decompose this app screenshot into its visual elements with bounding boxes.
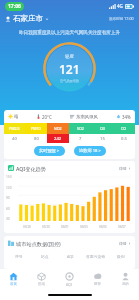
staticText: AQI: [67, 254, 74, 259]
button[interactable]: 首页: [0, 269, 27, 289]
staticText: SO2: [77, 126, 84, 131]
staticText: 242: [54, 136, 62, 142]
staticText: 120: [6, 186, 12, 190]
staticText: 0.5: [121, 136, 127, 142]
staticText: CO: [121, 126, 127, 131]
staticText: 30: [6, 217, 10, 221]
staticText: 我的: [122, 282, 129, 286]
other: Location: [5, 16, 11, 22]
staticText: 05/28: [23, 225, 31, 229]
staticText: 20°C: [42, 114, 52, 120]
staticText: AQI: [66, 282, 72, 287]
staticText: 7: [79, 136, 82, 142]
staticText: 晴: [14, 114, 19, 120]
staticText: 05/30: [42, 225, 50, 229]
staticText: 06/07: [118, 225, 126, 229]
button[interactable]: AQI: [55, 269, 83, 289]
button[interactable]: 区域: [27, 269, 55, 289]
staticText: 轻度: [65, 54, 74, 60]
staticText: 60: [6, 207, 10, 211]
staticText: O3: [100, 126, 105, 131]
staticText: 06/03: [80, 225, 88, 229]
staticText: NO2: [54, 126, 62, 131]
staticText: 06/05: [99, 225, 107, 229]
staticText: AQI变化趋势: [16, 165, 46, 172]
staticText: 4G: [117, 3, 123, 9]
staticText: 121: [59, 61, 80, 77]
staticText: 150: [6, 175, 12, 179]
staticText: 级别: [117, 254, 125, 259]
button[interactable]: 实时预报 >: [34, 146, 65, 156]
staticText: 昨日我国重度及以上污染天气网民关注度有所上升: [6, 30, 133, 36]
staticText: 17:06: [8, 3, 21, 10]
staticText: 区域: [38, 282, 45, 286]
staticText: 发布时间 17:00: [109, 16, 134, 21]
staticText: 流数据 18 >: [79, 148, 101, 154]
staticText: 15: [100, 136, 105, 142]
staticText: 06/01: [61, 225, 69, 229]
staticText: 实时预报 >: [39, 148, 60, 154]
staticText: 石家庄市: [13, 14, 43, 23]
staticText: 城市站点数据(国控): [16, 240, 61, 247]
staticText: 首要污染物: [86, 254, 105, 259]
staticText: 90: [6, 196, 10, 200]
button[interactable]: 预警: [83, 269, 111, 289]
staticText: 34%: [122, 114, 131, 120]
staticText: 详情: [119, 166, 127, 171]
button[interactable]: 流数据 18 >: [74, 146, 106, 156]
staticText: 站点: [41, 254, 49, 259]
staticText: 空气质量指数: [60, 79, 80, 83]
staticText: 40: [12, 136, 17, 142]
staticText: 详情: [119, 241, 127, 246]
button[interactable]: 我的: [111, 269, 139, 289]
button[interactable]: 详情: [119, 166, 131, 171]
staticText: PM2.5: [9, 126, 20, 131]
staticText: 预警: [94, 282, 101, 286]
staticText: PM10: [31, 126, 41, 131]
button[interactable]: Location: [5, 14, 49, 23]
button[interactable]: 详情: [119, 241, 131, 246]
staticText: 序号: [15, 254, 23, 259]
staticText: 东南风微风: [76, 114, 98, 120]
staticText: 80: [34, 136, 39, 142]
staticText: 首页: [10, 282, 17, 286]
